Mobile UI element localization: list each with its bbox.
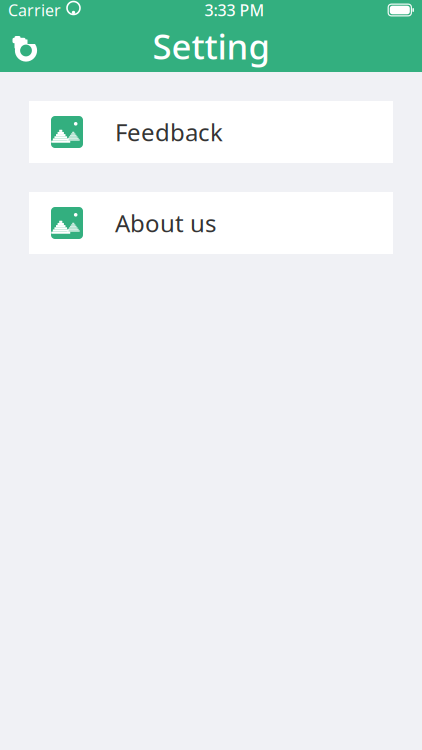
staticText: Feedback bbox=[115, 116, 223, 148]
button[interactable]: Feedback bbox=[29, 101, 393, 163]
staticText: Carrier bbox=[8, 0, 61, 21]
button[interactable]: About us bbox=[29, 192, 393, 254]
staticText: 3:33 PM bbox=[205, 0, 265, 21]
staticText: About us bbox=[115, 207, 216, 239]
staticText: Setting bbox=[152, 23, 269, 69]
button[interactable]: Back bbox=[0, 24, 48, 68]
